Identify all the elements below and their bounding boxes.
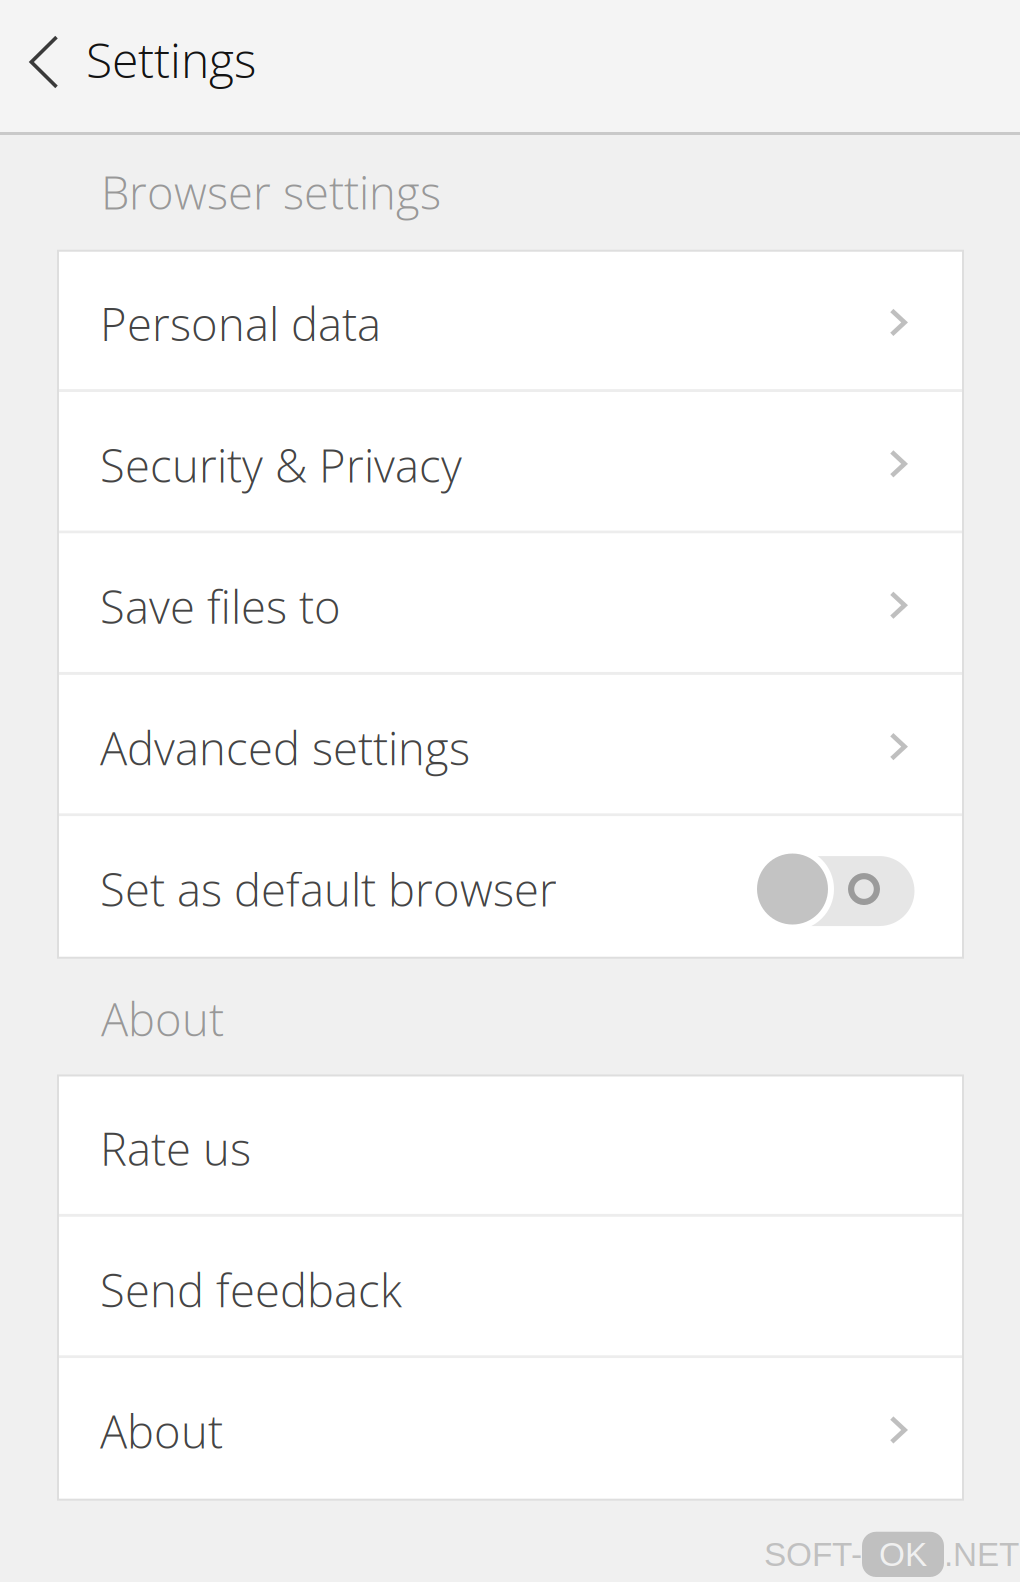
button[interactable]: Set as default browser xyxy=(58,816,963,958)
button[interactable]: Save files to xyxy=(58,533,963,675)
staticText: About xyxy=(101,988,224,1049)
staticText: Settings xyxy=(86,27,256,92)
staticText: .NET xyxy=(944,1536,1019,1573)
staticText: Browser settings xyxy=(101,161,441,223)
staticText: Advanced settings xyxy=(100,717,470,778)
button[interactable]: Send feedback xyxy=(58,1217,963,1358)
staticText: About xyxy=(100,1400,223,1462)
button[interactable]: Security & Privacy xyxy=(58,392,963,533)
staticText: Set as default browser xyxy=(100,858,557,920)
button[interactable]: Personal data xyxy=(58,251,963,392)
staticText: Rate us xyxy=(100,1117,251,1179)
staticText: OK xyxy=(879,1536,927,1573)
button[interactable]: Rate us xyxy=(58,1075,963,1217)
button[interactable]: Advanced settings xyxy=(58,675,963,816)
staticText: SOFT- xyxy=(764,1536,862,1573)
staticText: Personal data xyxy=(100,293,381,354)
staticText: Send feedback xyxy=(100,1259,402,1320)
staticText: Save files to xyxy=(100,575,341,637)
button[interactable]: Back xyxy=(0,0,86,132)
button[interactable]: About xyxy=(58,1358,963,1500)
staticText: Security & Privacy xyxy=(100,434,462,496)
